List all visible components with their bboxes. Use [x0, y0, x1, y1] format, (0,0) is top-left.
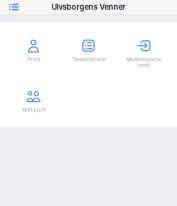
button[interactable]: Profil: [6, 22, 61, 74]
staticText: Ulvsborgens Venner: [51, 2, 125, 11]
staticText: Medlemsportal (web): [126, 56, 161, 68]
button[interactable]: Menu: [0, 0, 18, 14]
staticText: Tilmeld/afmeld: [71, 56, 105, 62]
button[interactable]: Skift profil: [6, 74, 61, 127]
staticText: Profil: [27, 56, 39, 62]
button[interactable]: Medlemsportal (web): [116, 22, 171, 74]
button[interactable]: Tilmeld/afmeld: [61, 22, 116, 74]
staticText: Skift profil: [21, 107, 45, 113]
